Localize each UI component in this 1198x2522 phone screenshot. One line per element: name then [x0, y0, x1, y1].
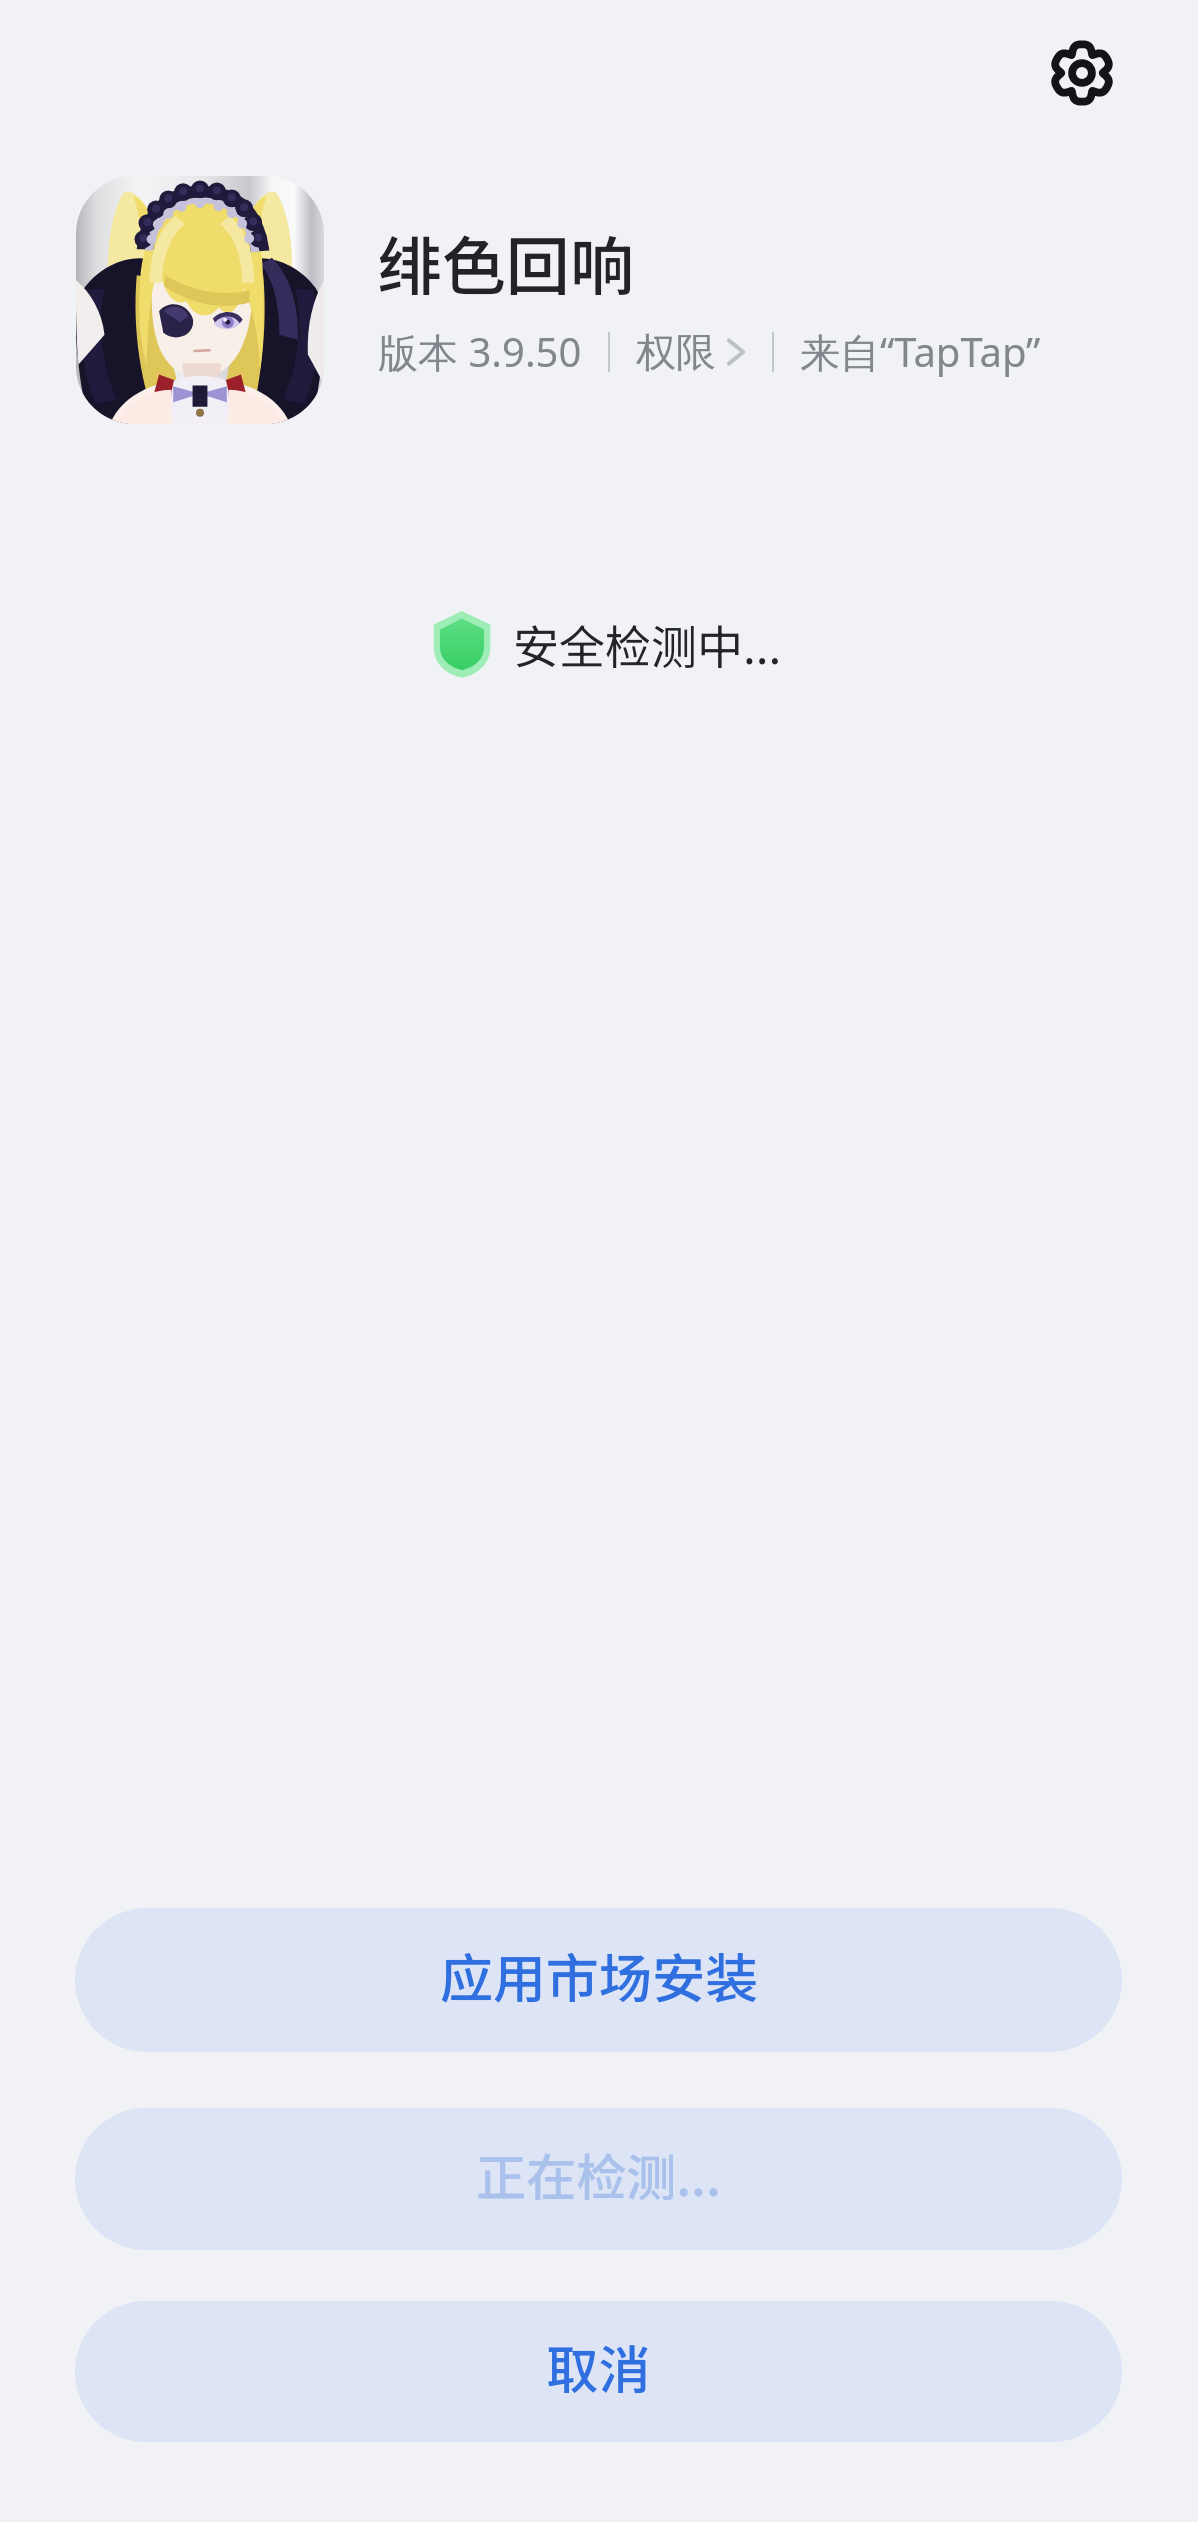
staticText: 绯色回响 — [378, 216, 634, 309]
staticText: 来自“TapTap” — [800, 324, 1041, 379]
button[interactable]: 应用市场安装 — [75, 1908, 1122, 2052]
button[interactable]: 正在检测... — [75, 2108, 1122, 2250]
button[interactable]: Settings — [1028, 19, 1136, 127]
staticText: 版本 3.9.50 — [378, 324, 582, 379]
staticText: 取消 — [546, 2329, 651, 2404]
button[interactable]: 权限 — [636, 327, 748, 377]
staticText: 应用市场安装 — [440, 1937, 758, 2014]
button[interactable]: 取消 — [75, 2301, 1122, 2442]
staticText: 正在检测... — [476, 2138, 721, 2210]
staticText: 权限 — [636, 327, 716, 377]
staticText: 安全检测中... — [513, 611, 782, 678]
